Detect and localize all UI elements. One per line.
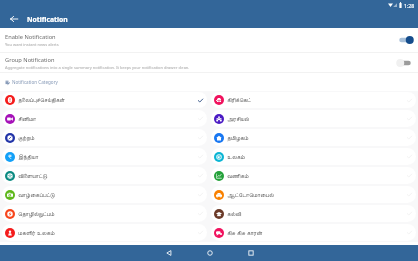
button[interactable]: கிரிக்கெட்	[211, 92, 416, 108]
button[interactable]: சினிமா	[2, 110, 207, 127]
button[interactable]: குற்றம்	[2, 129, 207, 146]
staticText: சினிமா	[18, 116, 198, 122]
button[interactable]: வணிகம்	[211, 167, 416, 184]
staticText: வாழ்கைப்பட்டு	[18, 192, 198, 198]
button[interactable]: தொழில்நுட்பம்	[2, 205, 207, 222]
button[interactable]: Enable Notification	[0, 28, 418, 52]
staticText: தலைப்புச்செய்திகள்	[18, 97, 198, 103]
button[interactable]: Home	[189, 245, 230, 261]
staticText: மகளிர் உலகம்	[18, 229, 198, 237]
button[interactable]: Back	[0, 10, 27, 28]
button[interactable]: அரசியல்	[211, 110, 416, 127]
button[interactable]: Toggle	[395, 33, 415, 47]
staticText: Aggregate notifications into a single su…	[5, 65, 190, 70]
button[interactable]: Recents	[230, 245, 271, 261]
button[interactable]: விளையாட்டு	[2, 167, 207, 184]
staticText: ஆட்டோமொபைல்	[227, 192, 407, 198]
button[interactable]: மகளிர் உலகம்	[2, 224, 207, 241]
button[interactable]: ஆட்டோமொபைல்	[211, 186, 416, 203]
staticText: Notification	[27, 15, 68, 24]
staticText: கிரிக்கெட்	[227, 97, 407, 103]
button[interactable]: Group Notification	[0, 53, 418, 72]
staticText: You want instant news alerts	[5, 42, 59, 47]
staticText: கிசு கிசு காரன்	[227, 229, 407, 237]
staticText: கல்வி	[227, 211, 407, 217]
button[interactable]: Back	[148, 245, 189, 261]
button[interactable]: உலகம்	[211, 148, 416, 165]
staticText: Notification Category	[12, 79, 58, 85]
staticText: தமிழகம்	[227, 135, 407, 141]
staticText: Enable Notification	[5, 33, 56, 41]
staticText: 1:28	[404, 2, 415, 9]
button[interactable]: கிசு கிசு காரன்	[211, 224, 416, 241]
button[interactable]: இந்தியா	[2, 148, 207, 165]
staticText: அரசியல்	[227, 116, 407, 122]
button[interactable]: வாழ்கைப்பட்டு	[2, 186, 207, 203]
staticText: Group Notification	[5, 56, 55, 64]
button[interactable]: கல்வி	[211, 205, 416, 222]
staticText: இந்தியா	[18, 154, 198, 160]
staticText: உலகம்	[227, 154, 407, 160]
button[interactable]: தலைப்புச்செய்திகள்	[2, 92, 207, 108]
staticText: வணிகம்	[227, 173, 407, 179]
button[interactable]: தமிழகம்	[211, 129, 416, 146]
staticText: தொழில்நுட்பம்	[18, 211, 198, 217]
staticText: விளையாட்டு	[18, 173, 198, 179]
staticText: குற்றம்	[18, 135, 198, 141]
button[interactable]: Toggle	[395, 56, 415, 70]
